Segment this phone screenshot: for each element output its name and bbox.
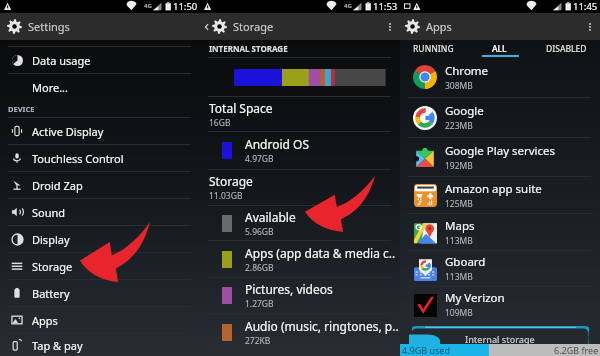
staticText: 308MB xyxy=(445,80,473,92)
staticText: INTERNAL STORAGE xyxy=(209,43,288,54)
button[interactable]: Storage xyxy=(200,170,400,205)
staticText: Settings xyxy=(28,19,70,34)
staticText: Battery xyxy=(32,286,70,301)
staticText: 11.03GB xyxy=(209,190,243,202)
staticText: Storage xyxy=(233,19,274,34)
staticText: Touchless Control xyxy=(32,151,124,166)
button[interactable]: Tap & pay xyxy=(0,334,200,356)
button[interactable]: Apps (app data & media c.. xyxy=(200,241,400,277)
button[interactable]: Google Play services xyxy=(400,138,600,176)
staticText: Droid Zap xyxy=(32,178,83,193)
staticText: More... xyxy=(32,80,69,95)
staticText: 113MB xyxy=(445,235,473,247)
staticText: 113MB xyxy=(445,271,473,283)
staticText: 16GB xyxy=(209,117,231,129)
staticText: 192MB xyxy=(445,160,473,172)
staticText: 4.97GB xyxy=(245,153,274,165)
staticText: Google Play services xyxy=(445,143,556,159)
button[interactable]: Total Space xyxy=(200,97,400,131)
staticText: Google xyxy=(445,103,484,119)
button[interactable]: Back xyxy=(202,22,212,32)
staticText: Tap & pay xyxy=(32,338,83,353)
staticText: Storage xyxy=(209,173,253,189)
staticText: Total Space xyxy=(209,100,273,116)
staticText: ALL xyxy=(492,43,507,55)
button[interactable]: ALL xyxy=(466,40,533,57)
staticText: 6.2GB free xyxy=(554,344,599,356)
staticText: Apps (app data & media c.. xyxy=(245,245,396,261)
button[interactable]: More options xyxy=(380,17,400,37)
staticText: Internal storage xyxy=(465,333,535,345)
staticText: 109MB xyxy=(445,307,473,319)
staticText: 4G xyxy=(344,2,352,10)
staticText: Pictures, videos xyxy=(245,281,333,297)
staticText: Apps xyxy=(32,313,58,328)
button[interactable]: Amazon app suite xyxy=(400,177,600,213)
button[interactable]: Available xyxy=(200,206,400,240)
staticText: 125MB xyxy=(445,198,473,210)
staticText: Gboard xyxy=(445,254,486,270)
staticText: 4.9GB used xyxy=(402,344,450,356)
button[interactable]: Droid Zap xyxy=(0,172,200,198)
staticText: My Verizon xyxy=(445,290,505,306)
button[interactable]: Storage xyxy=(0,253,200,279)
staticText: Amazon app suite xyxy=(445,181,542,197)
staticText: 5.96GB xyxy=(245,226,274,238)
staticText: Available xyxy=(245,209,296,225)
button[interactable]: More options xyxy=(580,17,600,37)
staticText: Maps xyxy=(445,218,475,234)
staticText: 272KB xyxy=(245,335,271,347)
button[interactable]: More... xyxy=(0,74,200,100)
button[interactable]: Active Display xyxy=(0,118,200,144)
staticText: Storage xyxy=(32,259,73,274)
button[interactable]: DISABLED xyxy=(533,40,600,57)
button[interactable]: Gboard xyxy=(400,251,600,286)
staticText: Android OS xyxy=(245,136,309,152)
staticText: 11:50 xyxy=(173,0,198,13)
staticText: Active Display xyxy=(32,124,104,139)
button[interactable]: Sound xyxy=(0,199,200,225)
staticText: RUNNING xyxy=(413,43,454,55)
staticText: 4G xyxy=(144,2,152,10)
button[interactable]: Google xyxy=(400,98,600,137)
button[interactable]: Display xyxy=(0,226,200,252)
staticText: 223MB xyxy=(445,120,473,132)
button[interactable]: Android OS xyxy=(200,132,400,169)
button[interactable]: Touchless Control xyxy=(0,145,200,171)
staticText: DEVICE xyxy=(8,104,35,114)
button[interactable]: RUNNING xyxy=(400,40,466,57)
button[interactable]: Audio (music, ringtones, p.. xyxy=(200,314,400,350)
staticText: 11:45 xyxy=(573,0,598,13)
staticText: 11:53 xyxy=(373,0,398,13)
staticText: DISABLED xyxy=(546,43,587,55)
button[interactable]: Maps xyxy=(400,214,600,250)
button[interactable]: Settings xyxy=(0,13,200,40)
button[interactable]: Chrome xyxy=(400,57,600,97)
button[interactable]: Pictures, videos xyxy=(200,278,400,313)
button[interactable]: Apps xyxy=(0,307,200,333)
staticText: Data usage xyxy=(32,53,91,68)
staticText: Audio (music, ringtones, p.. xyxy=(245,318,399,334)
staticText: Apps xyxy=(426,19,452,34)
staticText: Chrome xyxy=(445,63,489,79)
staticText: Display xyxy=(32,232,70,247)
button[interactable]: Data usage xyxy=(0,47,200,73)
button[interactable]: Battery xyxy=(0,280,200,306)
button[interactable]: My Verizon xyxy=(400,287,600,322)
staticText: Sound xyxy=(32,205,66,220)
staticText: 2.86GB xyxy=(245,262,274,274)
staticText: 1.27GB xyxy=(245,298,274,310)
